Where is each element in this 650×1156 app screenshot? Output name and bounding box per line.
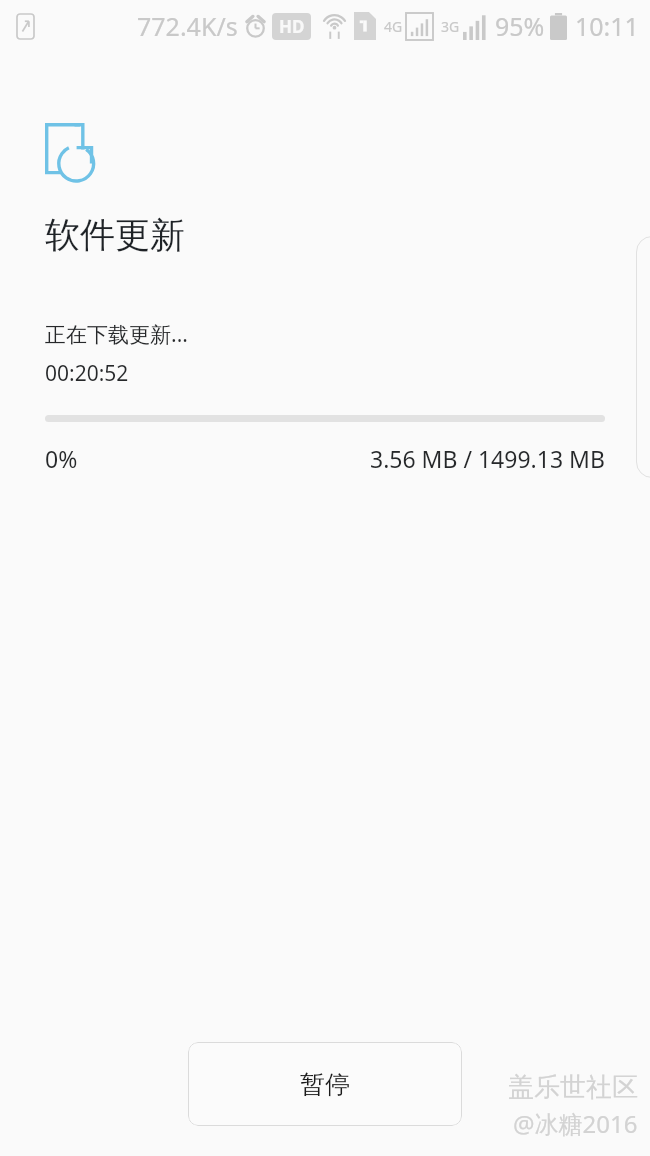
staticText: 00:20:52 xyxy=(45,359,129,388)
staticText: 95% xyxy=(495,9,545,43)
button[interactable]: 暂停 xyxy=(188,1042,462,1126)
staticText: 正在下载更新... xyxy=(45,320,188,349)
staticText: HD xyxy=(279,15,305,38)
staticText: 4G xyxy=(384,17,403,36)
staticText: 0% xyxy=(45,443,78,474)
staticText: 3G xyxy=(441,17,460,36)
staticText: 772.4K/s xyxy=(137,9,238,43)
other: Screen mirroring xyxy=(17,14,34,39)
staticText: @冰糖2016 xyxy=(513,1107,638,1140)
staticText: 盖乐世社区 xyxy=(508,1071,638,1104)
staticText: 10:11 xyxy=(575,9,639,43)
staticText: 软件更新 xyxy=(45,213,185,257)
staticText: 3.56 MB / 1499.13 MB xyxy=(370,443,605,474)
staticText: 暂停 xyxy=(300,1069,350,1100)
